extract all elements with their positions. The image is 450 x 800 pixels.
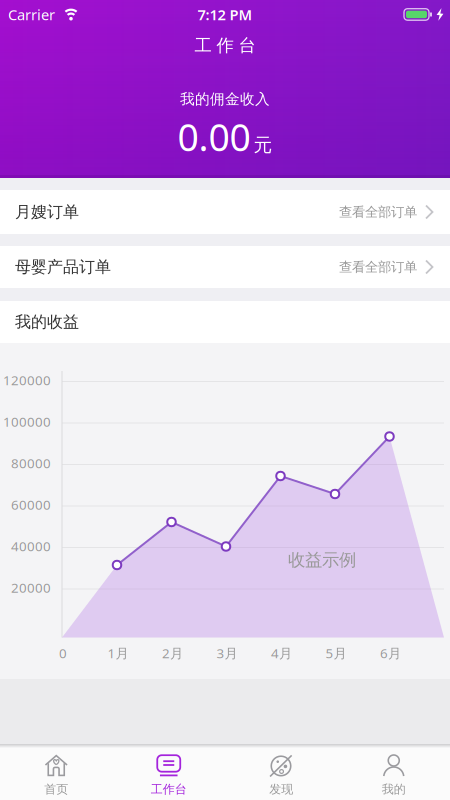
- staticText: 元: [253, 134, 272, 156]
- staticText: 我的: [382, 782, 406, 797]
- staticText: 20000: [11, 579, 51, 596]
- staticText: 6月: [380, 644, 401, 662]
- staticText: 3月: [216, 644, 237, 662]
- staticText: 工 作 台: [194, 35, 255, 56]
- staticText: 母婴产品订单: [15, 257, 111, 277]
- staticText: 0: [59, 644, 67, 662]
- staticText: 80000: [11, 454, 51, 472]
- staticText: 2月: [162, 644, 183, 662]
- button[interactable]: 母婴产品订单: [0, 246, 450, 288]
- staticText: 发现: [269, 782, 293, 797]
- button[interactable]: 首页: [0, 744, 112, 800]
- staticText: 40000: [11, 537, 51, 555]
- staticText: 7:12 PM: [197, 5, 252, 24]
- staticText: 我的佣金收入: [180, 90, 270, 108]
- button[interactable]: 我的: [337, 744, 450, 800]
- staticText: 查看全部订单: [339, 259, 417, 275]
- button[interactable]: 月嫂订单: [0, 190, 450, 234]
- staticText: 工作台: [151, 782, 187, 797]
- button[interactable]: 发现: [225, 744, 337, 800]
- staticText: 120000: [3, 371, 51, 389]
- staticText: 我的收益: [15, 312, 79, 332]
- staticText: 月嫂订单: [15, 202, 79, 222]
- staticText: 60000: [11, 496, 51, 513]
- staticText: Carrier: [8, 5, 55, 24]
- staticText: 5月: [325, 644, 346, 662]
- staticText: 0.00: [177, 112, 250, 162]
- staticText: 收益示例: [288, 549, 356, 571]
- button[interactable]: 工作台: [112, 744, 225, 800]
- staticText: 查看全部订单: [339, 204, 417, 220]
- staticText: 首页: [44, 782, 68, 797]
- staticText: 1月: [107, 644, 128, 662]
- staticText: 100000: [3, 413, 51, 430]
- staticText: 4月: [271, 644, 292, 662]
